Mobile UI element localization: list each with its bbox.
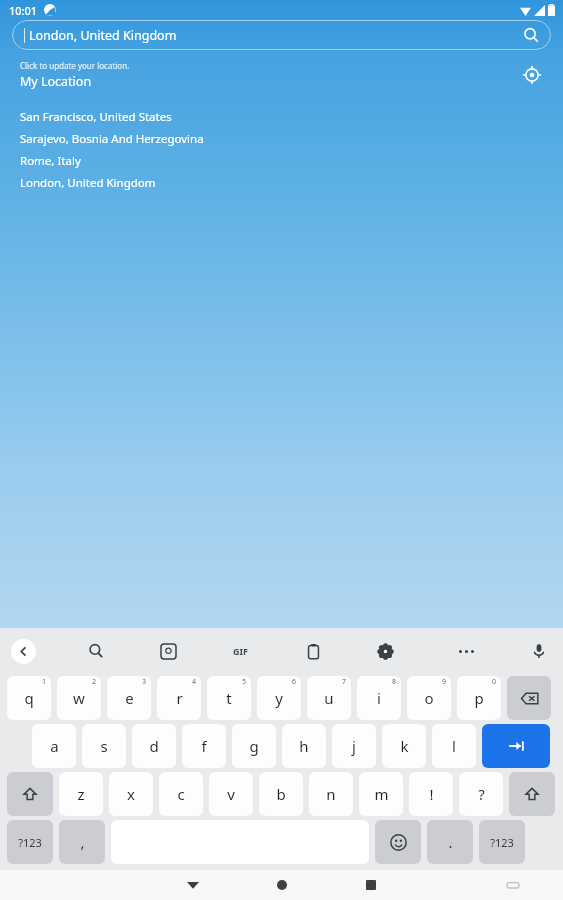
- staticText: ?: [478, 784, 485, 804]
- staticText: London, United Kingdom: [20, 175, 156, 191]
- button[interactable]: !: [409, 772, 453, 816]
- button[interactable]: .: [427, 820, 473, 864]
- staticText: 6: [292, 677, 297, 687]
- staticText: 0: [492, 677, 497, 687]
- staticText: s: [100, 736, 108, 756]
- staticText: m: [374, 784, 389, 804]
- staticText: g: [249, 736, 259, 756]
- button[interactable]: w: [57, 676, 101, 720]
- button[interactable]: London, United Kingdom: [12, 20, 551, 50]
- staticText: GIF: [233, 645, 248, 657]
- staticText: t: [226, 688, 232, 708]
- button[interactable]: m: [359, 772, 403, 816]
- button[interactable]: l: [432, 724, 476, 768]
- button[interactable]: Shift: [509, 772, 555, 816]
- staticText: 5: [242, 677, 247, 687]
- button[interactable]: f: [182, 724, 226, 768]
- button[interactable]: Settings: [368, 634, 402, 668]
- staticText: x: [127, 784, 135, 804]
- staticText: o: [424, 688, 434, 708]
- button[interactable]: a: [32, 724, 76, 768]
- button[interactable]: j: [332, 724, 376, 768]
- button[interactable]: San Francisco, United States: [0, 106, 563, 128]
- button[interactable]: c: [159, 772, 203, 816]
- button[interactable]: Shift: [7, 772, 53, 816]
- staticText: .: [448, 832, 453, 852]
- button[interactable]: d: [132, 724, 176, 768]
- button[interactable]: Clipboard: [296, 634, 330, 668]
- button[interactable]: Search: [79, 634, 113, 668]
- button[interactable]: k: [382, 724, 426, 768]
- button[interactable]: GIF: [223, 634, 257, 668]
- staticText: ,: [80, 832, 85, 852]
- staticText: San Francisco, United States: [20, 109, 172, 125]
- staticText: f: [201, 736, 207, 756]
- staticText: j: [352, 736, 356, 756]
- staticText: e: [125, 688, 134, 708]
- staticText: n: [326, 784, 336, 804]
- button[interactable]: x: [109, 772, 153, 816]
- button[interactable]: Emoji: [375, 820, 421, 864]
- staticText: i: [377, 688, 381, 708]
- button[interactable]: e: [107, 676, 151, 720]
- staticText: k: [400, 736, 409, 756]
- staticText: 8: [392, 677, 397, 687]
- button[interactable]: t: [207, 676, 251, 720]
- staticText: d: [149, 736, 159, 756]
- staticText: r: [176, 688, 183, 708]
- staticText: 2: [92, 677, 97, 687]
- button[interactable]: z: [59, 772, 103, 816]
- staticText: Rome, Italy: [20, 153, 81, 169]
- button[interactable]: Rome, Italy: [0, 150, 563, 172]
- staticText: l: [452, 736, 456, 756]
- staticText: ?123: [18, 835, 42, 850]
- button[interactable]: Use current location: [519, 62, 545, 88]
- button[interactable]: More options: [449, 634, 483, 668]
- button[interactable]: b: [259, 772, 303, 816]
- button[interactable]: u: [307, 676, 351, 720]
- button[interactable]: i: [357, 676, 401, 720]
- button[interactable]: Stickers: [151, 634, 185, 668]
- button[interactable]: Sarajevo, Bosnia And Herzegovina: [0, 128, 563, 150]
- button[interactable]: s: [82, 724, 126, 768]
- button[interactable]: n: [309, 772, 353, 816]
- button[interactable]: Voice input: [522, 634, 556, 668]
- button[interactable]: q: [7, 676, 51, 720]
- staticText: b: [276, 784, 286, 804]
- button[interactable]: v: [209, 772, 253, 816]
- staticText: v: [227, 784, 235, 804]
- staticText: 4: [192, 677, 197, 687]
- staticText: y: [275, 688, 283, 708]
- button[interactable]: Click to update your location.: [0, 56, 563, 94]
- button[interactable]: ?: [459, 772, 503, 816]
- staticText: p: [474, 688, 484, 708]
- button[interactable]: ,: [59, 820, 105, 864]
- button[interactable]: h: [282, 724, 326, 768]
- button[interactable]: Back: [11, 639, 36, 664]
- button[interactable]: Switch keyboard: [498, 870, 528, 900]
- staticText: 3: [142, 677, 147, 687]
- button[interactable]: ?123: [7, 820, 53, 864]
- button[interactable]: Back: [178, 870, 208, 900]
- button[interactable]: Home: [267, 870, 297, 900]
- staticText: 10:01: [9, 3, 38, 18]
- staticText: z: [77, 784, 85, 804]
- button[interactable]: g: [232, 724, 276, 768]
- button[interactable]: Recent apps: [356, 870, 386, 900]
- staticText: h: [299, 736, 309, 756]
- staticText: 7: [342, 677, 347, 687]
- other: Search: [523, 27, 539, 43]
- button[interactable]: Enter: [482, 724, 550, 768]
- button[interactable]: r: [157, 676, 201, 720]
- button[interactable]: ?123: [479, 820, 525, 864]
- button[interactable]: London, United Kingdom: [0, 172, 563, 194]
- staticText: 1: [42, 677, 47, 687]
- staticText: c: [177, 784, 185, 804]
- button[interactable]: y: [257, 676, 301, 720]
- staticText: Sarajevo, Bosnia And Herzegovina: [20, 131, 204, 147]
- button[interactable]: Backspace: [507, 676, 551, 720]
- button[interactable]: o: [407, 676, 451, 720]
- button[interactable]: p: [457, 676, 501, 720]
- staticText: Click to update your location.: [20, 60, 130, 71]
